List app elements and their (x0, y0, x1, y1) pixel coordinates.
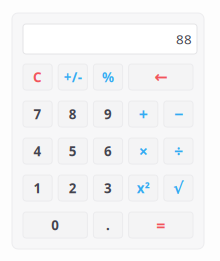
staticText: % (102, 68, 114, 86)
button[interactable]: 4 (23, 138, 52, 164)
staticText: × (139, 140, 148, 162)
button[interactable]: 1 (23, 175, 52, 201)
button[interactable]: C (23, 64, 52, 90)
button[interactable]: 2 (58, 175, 87, 201)
button[interactable]: 7 (23, 101, 52, 127)
button[interactable]: 5 (58, 138, 87, 164)
button[interactable]: 6 (93, 138, 123, 164)
button[interactable]: 3 (93, 175, 123, 201)
staticText: x² (137, 179, 150, 197)
button[interactable]: 9 (93, 101, 123, 127)
staticText: +/- (64, 68, 82, 86)
button[interactable]: 8 (58, 101, 87, 127)
staticText: . (106, 216, 110, 234)
button[interactable]: + (129, 101, 158, 127)
staticText: 6 (104, 142, 112, 160)
staticText: 4 (34, 142, 42, 160)
staticText: 5 (69, 142, 77, 160)
button[interactable]: x² (129, 175, 158, 201)
staticText: 7 (34, 105, 42, 123)
button[interactable]: − (164, 101, 193, 127)
staticText: 0 (51, 216, 59, 234)
staticText: 3 (104, 179, 112, 197)
button[interactable]: +/- (58, 64, 87, 90)
staticText: 88 (176, 30, 192, 48)
staticText: 2 (69, 179, 77, 197)
button[interactable]: ← (129, 64, 193, 90)
staticText: 8 (69, 105, 77, 123)
staticText: 1 (34, 179, 42, 197)
staticText: − (174, 103, 183, 125)
button[interactable]: √ (164, 175, 193, 201)
staticText: 9 (104, 105, 112, 123)
staticText: C (33, 68, 42, 86)
staticText: = (156, 214, 165, 236)
button[interactable]: ÷ (164, 138, 193, 164)
button[interactable]: × (129, 138, 158, 164)
button[interactable]: 0 (23, 212, 87, 238)
button[interactable]: = (129, 212, 193, 238)
staticText: √ (173, 179, 184, 197)
staticText: ← (154, 68, 167, 86)
button[interactable]: . (93, 212, 123, 238)
button[interactable]: % (93, 64, 123, 90)
staticText: ÷ (174, 140, 183, 162)
staticText: + (139, 103, 148, 125)
